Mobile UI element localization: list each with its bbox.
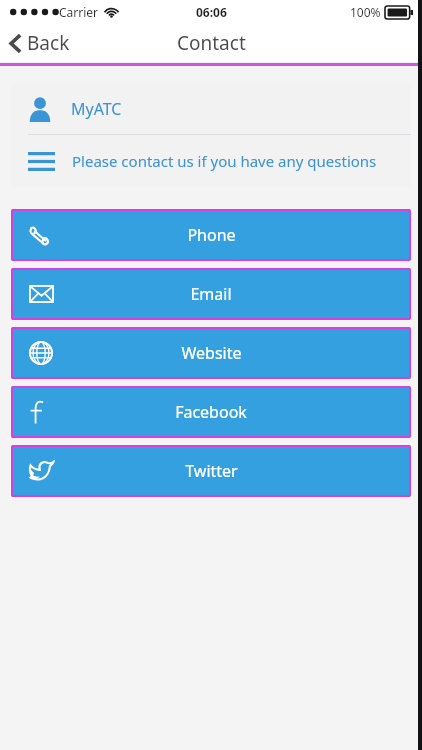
button[interactable]: Email <box>11 268 411 320</box>
other: Facebook <box>29 400 45 424</box>
staticText: MyATC <box>71 98 122 120</box>
button[interactable]: Twitter <box>11 445 411 497</box>
staticText: 100% <box>350 4 381 20</box>
button[interactable]: Back <box>0 26 84 60</box>
other: Website <box>29 341 53 365</box>
button[interactable]: Phone <box>11 209 411 261</box>
staticText: 06:06 <box>196 4 227 20</box>
staticText: Back <box>27 30 70 56</box>
staticText: Twitter <box>185 460 238 482</box>
staticText: Carrier <box>59 4 99 20</box>
other: Email <box>29 285 54 303</box>
staticText: Contact <box>177 30 246 56</box>
staticText: Email <box>190 283 232 305</box>
button[interactable]: MyATC <box>11 84 411 134</box>
other: Phone <box>29 224 52 247</box>
staticText: Phone <box>187 224 236 246</box>
button[interactable]: Please contact us if you have any questi… <box>11 135 411 187</box>
button[interactable]: Website <box>11 327 411 379</box>
staticText: Facebook <box>175 401 247 423</box>
button[interactable]: Facebook <box>11 386 411 438</box>
staticText: Website <box>181 342 242 364</box>
staticText: Please contact us if you have any questi… <box>72 151 377 171</box>
other: Twitter <box>29 461 54 482</box>
